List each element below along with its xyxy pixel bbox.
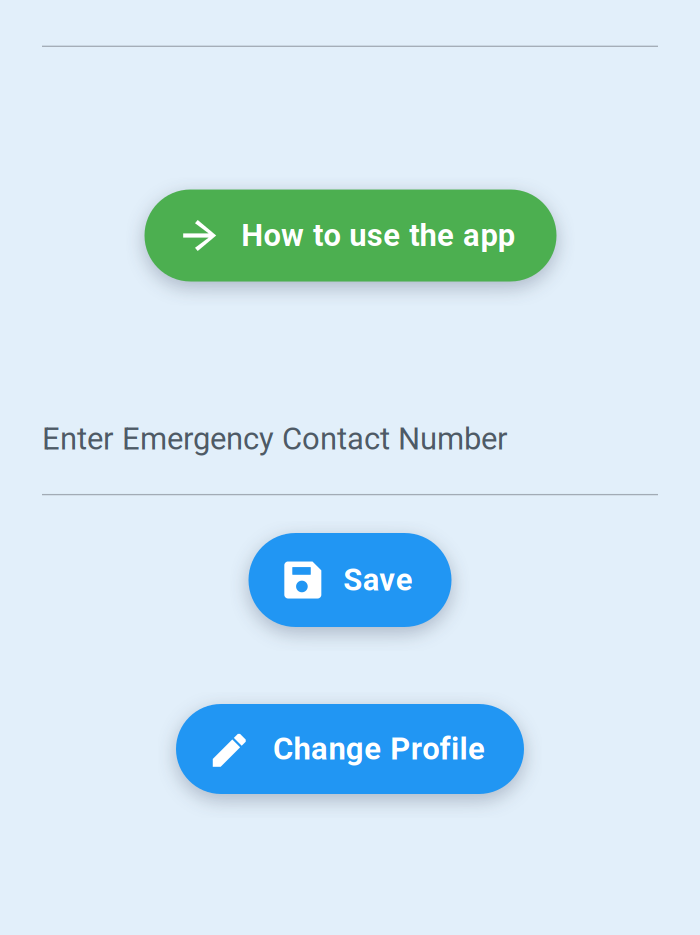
staticText: Enter Emergency Contact Number — [42, 421, 508, 457]
button[interactable]: How to use the app — [144, 189, 556, 281]
staticText: Save — [343, 562, 413, 598]
button[interactable]: Save — [248, 533, 451, 627]
staticText: Change Profile — [273, 731, 485, 767]
button[interactable]: Change Profile — [176, 704, 524, 794]
staticText: How to use the app — [241, 217, 515, 254]
